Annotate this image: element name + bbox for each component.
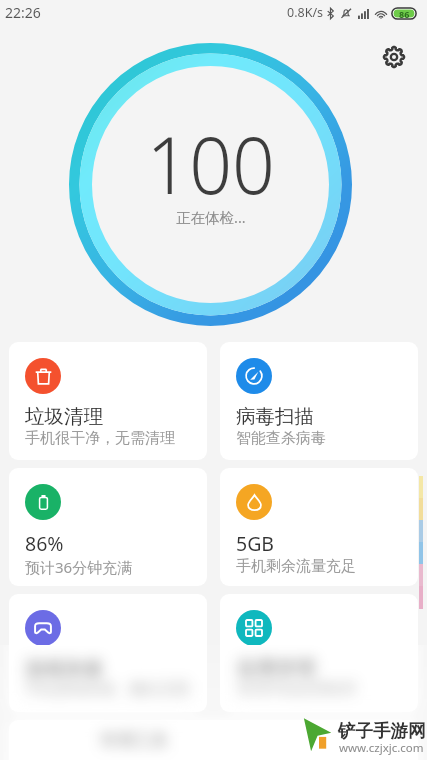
staticText: 手机很干净，无需清理 bbox=[25, 429, 175, 448]
staticText: 应用管理 bbox=[237, 656, 315, 681]
staticText: 管理手机应用程序 bbox=[237, 680, 357, 699]
staticText: 病毒扫描 bbox=[236, 404, 314, 429]
staticText: 5GB bbox=[236, 530, 275, 557]
staticText: 手机游戏加速，畅玩无阻 bbox=[25, 680, 190, 699]
staticText: 100 bbox=[146, 110, 276, 218]
button[interactable]: 垃圾清理 bbox=[9, 342, 207, 460]
staticText: 预计36分钟充满 bbox=[25, 557, 133, 577]
button[interactable]: 5GB bbox=[220, 468, 418, 586]
staticText: 0.8K/s bbox=[287, 4, 324, 21]
staticText: 智能查杀病毒 bbox=[236, 429, 326, 448]
button[interactable]: 病毒扫描 bbox=[220, 342, 418, 460]
staticText: 手机剩余流量充足 bbox=[236, 557, 356, 576]
staticText: 垃圾清理 bbox=[25, 404, 103, 429]
staticText: 22:26 bbox=[5, 3, 41, 22]
staticText: 正在体检... bbox=[176, 207, 246, 227]
staticText: 游戏加速 bbox=[25, 656, 103, 681]
staticText: 常用工具 bbox=[100, 730, 168, 751]
staticText: 86% bbox=[25, 530, 64, 557]
staticText: 铲子手游网 bbox=[338, 720, 426, 742]
button[interactable] bbox=[9, 594, 207, 712]
staticText: 86 bbox=[399, 8, 410, 20]
button[interactable] bbox=[9, 720, 418, 760]
staticText: www.czjxjc.com bbox=[339, 740, 424, 756]
button[interactable]: Settings bbox=[376, 39, 412, 75]
button[interactable] bbox=[220, 594, 418, 712]
button[interactable]: 86% bbox=[9, 468, 207, 586]
